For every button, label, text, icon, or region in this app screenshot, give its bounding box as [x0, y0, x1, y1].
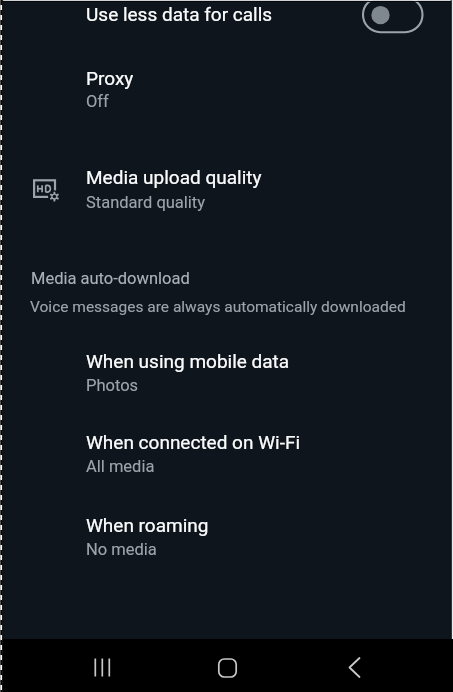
button[interactable]: When connected on Wi-Fi	[0, 422, 453, 504]
button[interactable]: Use less data for calls	[0, 0, 453, 50]
staticText: When roaming	[86, 514, 209, 536]
staticText: When connected on Wi-Fi	[86, 431, 301, 453]
staticText: When using mobile data	[86, 350, 290, 372]
button[interactable]: Use less data for calls toggle	[353, 0, 429, 42]
staticText: No media	[86, 540, 157, 559]
staticText: Media auto-download	[31, 269, 190, 288]
button[interactable]: Proxy	[0, 56, 453, 120]
staticText: Standard quality	[86, 193, 206, 212]
staticText: Off	[86, 92, 109, 111]
staticText: Proxy	[86, 67, 134, 89]
staticText: Use less data for calls	[86, 3, 273, 25]
button[interactable]: Home	[189, 639, 265, 692]
staticText: Voice messages are always automatically …	[30, 298, 406, 316]
staticText: Media upload quality	[86, 166, 262, 188]
staticText: All media	[86, 457, 155, 476]
button[interactable]: When roaming	[0, 505, 453, 587]
button[interactable]: Recent apps	[64, 639, 140, 692]
button[interactable]: Back	[316, 639, 392, 692]
button[interactable]: Media upload quality	[0, 157, 453, 223]
button[interactable]: When using mobile data	[0, 341, 453, 423]
staticText: Photos	[86, 376, 139, 395]
